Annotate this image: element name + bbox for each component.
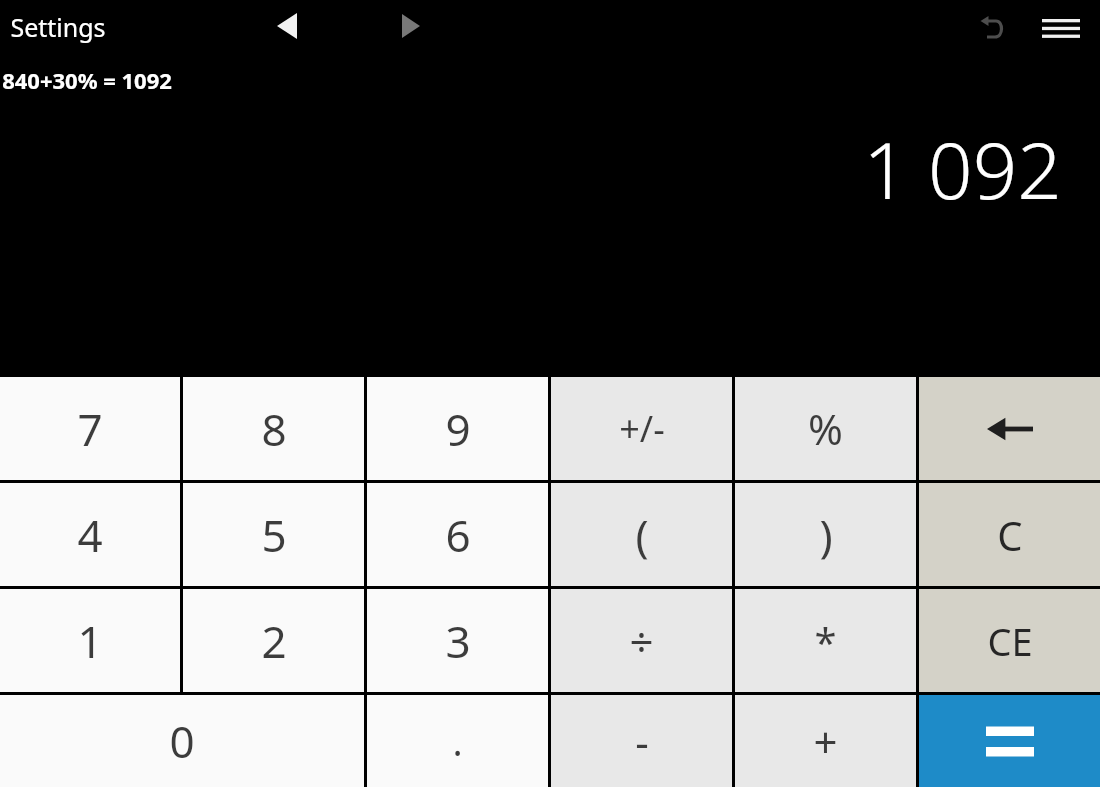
button[interactable]: Next	[388, 3, 434, 49]
button[interactable]: 7	[0, 377, 180, 480]
button[interactable]: 0	[0, 695, 364, 787]
button[interactable]: *	[735, 589, 916, 692]
staticText: +/-	[619, 404, 665, 453]
staticText: -	[635, 713, 649, 770]
button[interactable]: Undo	[966, 1, 1020, 55]
staticText: (	[635, 505, 649, 565]
button[interactable]: Previous	[264, 3, 310, 49]
button[interactable]: ÷	[551, 589, 732, 692]
staticText: *	[814, 614, 837, 668]
button[interactable]: 5	[183, 483, 364, 586]
staticText: C	[997, 508, 1023, 562]
staticText: 2	[261, 611, 287, 671]
button[interactable]: 4	[0, 483, 180, 586]
staticText: 7	[77, 399, 103, 459]
staticText: 840+30% = 1092	[2, 65, 172, 95]
staticText: ÷	[629, 612, 654, 669]
staticText: 1 092	[863, 116, 1062, 222]
staticText: 0	[169, 711, 195, 771]
button[interactable]: Menu	[1034, 1, 1088, 55]
staticText: 1	[77, 611, 103, 671]
button[interactable]: 9	[367, 377, 548, 480]
button[interactable]: -	[551, 695, 732, 787]
staticText: Settings	[10, 10, 106, 44]
button[interactable]: 3	[367, 589, 548, 692]
button[interactable]: +	[735, 695, 916, 787]
staticText: 8	[261, 399, 287, 459]
staticText: 6	[445, 505, 471, 565]
button[interactable]: C	[919, 483, 1100, 586]
staticText: .	[452, 715, 463, 767]
staticText: 3	[445, 611, 471, 671]
button[interactable]: (	[551, 483, 732, 586]
staticText: %	[808, 400, 843, 457]
staticText: 4	[77, 505, 103, 565]
staticText: 9	[445, 399, 471, 459]
button[interactable]: Backspace	[919, 377, 1100, 480]
button[interactable]: %	[735, 377, 916, 480]
button[interactable]: )	[735, 483, 916, 586]
button[interactable]: CE	[919, 589, 1100, 692]
staticText: +	[813, 713, 838, 770]
button[interactable]: 6	[367, 483, 548, 586]
button[interactable]: Settings	[4, 5, 112, 49]
button[interactable]: 1	[0, 589, 180, 692]
button[interactable]: 2	[183, 589, 364, 692]
button[interactable]: +/-	[551, 377, 732, 480]
staticText: CE	[987, 615, 1033, 667]
staticText: )	[819, 505, 833, 565]
button[interactable]: 8	[183, 377, 364, 480]
button[interactable]: Equals	[919, 695, 1100, 787]
staticText: 5	[261, 505, 287, 565]
button[interactable]: .	[367, 695, 548, 787]
